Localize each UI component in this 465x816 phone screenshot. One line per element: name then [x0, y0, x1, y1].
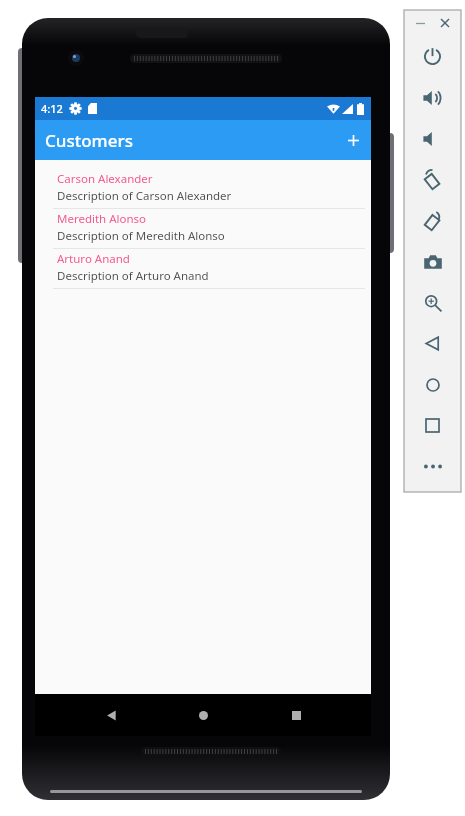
staticText: Meredith Alonso [57, 211, 147, 227]
button[interactable]: Power [404, 36, 461, 77]
button[interactable]: Zoom [404, 282, 461, 323]
staticText: Description of Arturo Anand [57, 268, 209, 284]
button[interactable]: Take screenshot [404, 241, 461, 282]
staticText: Customers [45, 129, 133, 152]
staticText: Description of Carson Alexander [57, 188, 232, 204]
button[interactable]: Minimize [411, 14, 429, 32]
button[interactable]: Add customer [335, 120, 371, 160]
button[interactable]: Home [186, 698, 220, 732]
button[interactable]: Recent apps [279, 698, 313, 732]
staticText: Description of Meredith Alonso [57, 228, 225, 244]
staticText: 4:12 [41, 101, 63, 116]
staticText: Carson Alexander [57, 171, 153, 187]
button[interactable]: Overview [404, 405, 461, 446]
button[interactable]: Meredith Alonso [35, 209, 371, 249]
button[interactable]: Volume down [404, 118, 461, 159]
staticText: Arturo Anand [57, 251, 130, 267]
button[interactable]: Rotate right [404, 200, 461, 241]
button[interactable]: More [404, 446, 461, 487]
button[interactable]: Rotate left [404, 159, 461, 200]
button[interactable]: Back [94, 698, 128, 732]
button[interactable]: Close [436, 14, 454, 32]
button[interactable]: Volume up [404, 77, 461, 118]
button[interactable]: Arturo Anand [35, 249, 371, 289]
button[interactable]: Carson Alexander [35, 169, 371, 209]
button[interactable]: Home [404, 364, 461, 405]
button[interactable]: Back [404, 323, 461, 364]
